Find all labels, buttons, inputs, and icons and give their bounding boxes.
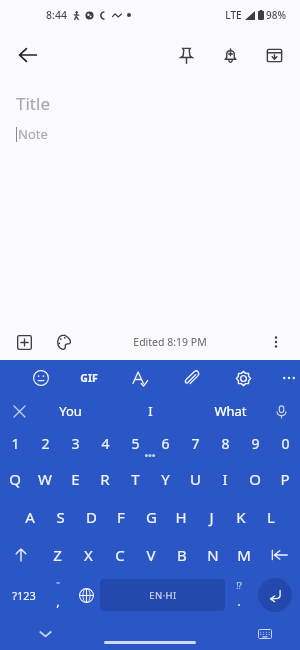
button[interactable]: EN·HI <box>100 579 225 611</box>
button[interactable]: Keyboard settings <box>228 363 258 393</box>
button[interactable]: P <box>270 460 300 498</box>
button[interactable]: 3 <box>60 426 90 460</box>
staticText: Z <box>53 545 62 565</box>
staticText: H <box>175 507 187 527</box>
button[interactable]: Note <box>16 125 284 143</box>
button[interactable]: J <box>196 498 226 536</box>
staticText: 0 <box>281 434 290 453</box>
button[interactable]: Switch keyboard <box>252 621 278 647</box>
button[interactable]: Enter <box>258 578 292 612</box>
staticText: M <box>237 545 251 565</box>
button[interactable]: 9 <box>240 426 270 460</box>
button[interactable]: 7 <box>180 426 210 460</box>
button[interactable]: E <box>60 460 90 498</box>
button[interactable]: A <box>14 498 45 536</box>
button[interactable]: Z <box>42 536 73 574</box>
staticText: . <box>237 592 241 610</box>
button[interactable]: Q <box>0 460 30 498</box>
button[interactable]: 8 <box>210 426 240 460</box>
button[interactable]: 4 <box>90 426 120 460</box>
button[interactable]: G <box>136 498 166 536</box>
button[interactable]: More <box>278 363 300 393</box>
button[interactable]: Pin <box>166 35 206 75</box>
button[interactable]: What <box>190 396 270 426</box>
button[interactable]: Add <box>8 326 40 358</box>
button[interactable]: ?123 <box>4 574 43 616</box>
button[interactable]: 6 <box>150 426 180 460</box>
button[interactable]: T <box>120 460 150 498</box>
button[interactable]: F <box>106 498 136 536</box>
button[interactable]: Y <box>150 460 180 498</box>
staticText: L <box>267 507 275 527</box>
staticText: Y <box>161 469 170 489</box>
button[interactable]: Attach <box>176 363 206 393</box>
button[interactable]: Shift <box>0 536 42 574</box>
staticText: S <box>56 507 65 527</box>
staticText: E <box>71 469 80 489</box>
staticText: N <box>207 545 219 565</box>
button[interactable]: S <box>45 498 76 536</box>
button[interactable]: X <box>73 536 104 574</box>
button[interactable]: R <box>90 460 120 498</box>
button[interactable]: Voice input <box>268 398 294 424</box>
button[interactable]: Title <box>16 92 284 115</box>
staticText: You <box>59 402 82 420</box>
button[interactable]: C <box>104 536 135 574</box>
button[interactable]: W <box>30 460 60 498</box>
staticText: 98% <box>266 8 286 22</box>
staticText: P <box>280 469 290 489</box>
staticText: What <box>214 402 247 420</box>
staticText: Title <box>16 92 50 115</box>
staticText: X <box>84 545 93 565</box>
staticText: Q <box>9 469 21 489</box>
button[interactable]: Color palette <box>48 326 80 358</box>
button[interactable]: More options <box>260 326 292 358</box>
staticText: ?123 <box>12 588 36 603</box>
button[interactable]: H <box>166 498 196 536</box>
button[interactable]: You <box>30 396 110 426</box>
staticText: 8:44 <box>46 8 67 22</box>
staticText: EN·HI <box>149 589 177 602</box>
staticText: I <box>148 402 153 420</box>
staticText: A <box>25 507 35 527</box>
button[interactable]: Emoji <box>26 363 56 393</box>
button[interactable]: GIF <box>76 367 102 389</box>
button[interactable]: 2 <box>30 426 60 460</box>
staticText: G <box>146 507 157 527</box>
button[interactable]: Add reminder <box>210 35 250 75</box>
button[interactable]: 0 <box>270 426 300 460</box>
button[interactable]: 5 <box>120 426 150 460</box>
button[interactable]: L <box>256 498 286 536</box>
button[interactable]: Back <box>6 33 50 77</box>
staticText: Edited 8:19 PM <box>133 335 207 349</box>
button[interactable]: Period <box>225 574 253 616</box>
button[interactable]: Comma <box>43 574 72 616</box>
staticText: K <box>236 507 246 527</box>
button[interactable]: Change language <box>72 574 100 616</box>
button[interactable]: M <box>228 536 259 574</box>
button[interactable]: D <box>76 498 106 536</box>
staticText: 2 <box>41 434 50 453</box>
button[interactable]: O <box>240 460 270 498</box>
button[interactable]: U <box>180 460 210 498</box>
button[interactable]: Hide keyboard <box>32 621 58 647</box>
staticText: J <box>209 507 214 527</box>
staticText: D <box>86 507 97 527</box>
button[interactable]: V <box>135 536 166 574</box>
staticText: Note <box>18 125 48 143</box>
button[interactable]: 1 <box>0 426 30 460</box>
button[interactable]: Archive <box>254 35 294 75</box>
button[interactable]: Backspace <box>259 536 300 574</box>
button[interactable]: B <box>166 536 197 574</box>
button[interactable]: I <box>110 396 190 426</box>
staticText: I <box>222 469 228 489</box>
button[interactable]: I <box>210 460 240 498</box>
button[interactable]: Dismiss suggestions <box>6 398 32 424</box>
button[interactable]: Spell check <box>124 363 154 393</box>
button[interactable]: N <box>197 536 228 574</box>
staticText: 9 <box>251 434 260 453</box>
staticText: LTE <box>225 8 242 22</box>
staticText: V <box>146 545 156 565</box>
button[interactable]: K <box>226 498 256 536</box>
staticText: , <box>56 592 60 610</box>
